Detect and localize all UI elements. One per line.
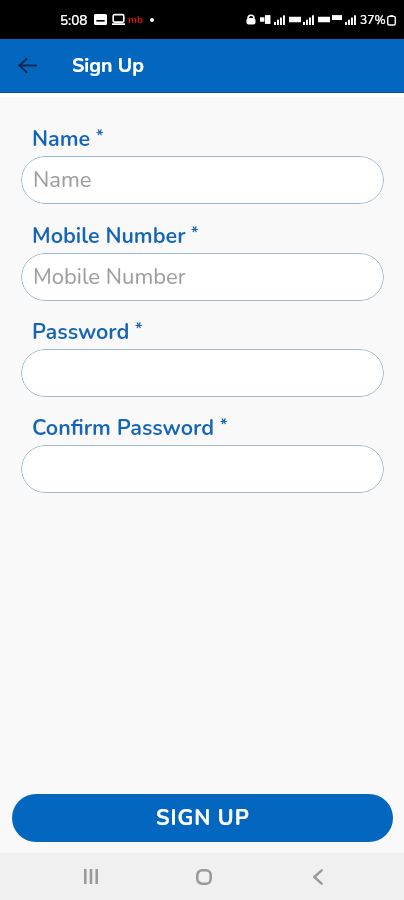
staticText: Sign Up	[72, 52, 144, 79]
button[interactable]: Back	[295, 853, 340, 900]
staticText: mb	[128, 13, 143, 27]
button[interactable]: SIGN UP	[12, 794, 393, 842]
button[interactable]	[21, 349, 384, 397]
button[interactable]: Back	[4, 42, 50, 88]
staticText: 5:08	[60, 11, 88, 29]
staticText: *	[130, 317, 143, 341]
staticText: SIGN UP	[156, 803, 250, 832]
button[interactable]: Name	[21, 156, 384, 204]
staticText: Mobile Number	[32, 221, 186, 250]
staticText: Password	[32, 317, 130, 346]
staticText: Name	[33, 165, 92, 195]
staticText: *	[91, 124, 104, 148]
staticText: Mobile Number	[33, 262, 186, 292]
staticText: *	[186, 221, 199, 245]
button[interactable]: Recent apps	[68, 853, 113, 900]
staticText: *	[215, 413, 228, 437]
staticText: 37%	[360, 12, 386, 28]
staticText: Confirm Password	[32, 413, 215, 442]
button[interactable]: Home	[181, 853, 226, 900]
staticText: Name	[32, 124, 91, 153]
button[interactable]: Mobile Number	[21, 253, 384, 301]
button[interactable]	[21, 445, 384, 493]
